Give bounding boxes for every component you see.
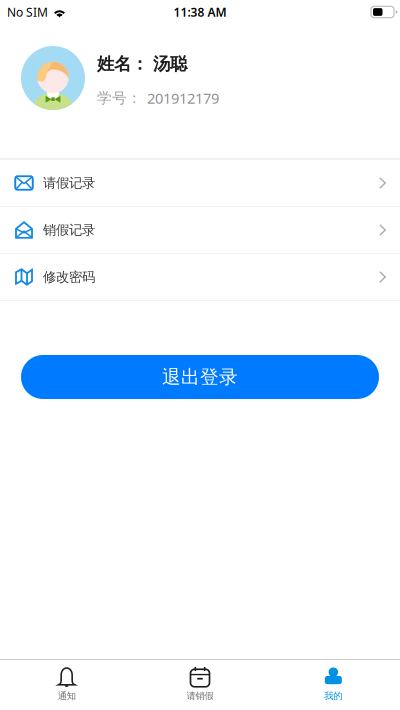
staticText: 修改密码 bbox=[43, 269, 95, 285]
button[interactable]: 通知 bbox=[0, 660, 133, 710]
button[interactable]: 请销假 bbox=[133, 660, 267, 710]
staticText: 通知 bbox=[58, 690, 76, 702]
staticText: No SIM bbox=[7, 4, 48, 20]
staticText: 退出登录 bbox=[162, 365, 238, 388]
staticText: 我的 bbox=[324, 690, 342, 702]
staticText: 请假记录 bbox=[43, 175, 95, 191]
staticText: 销假记录 bbox=[43, 222, 95, 238]
staticText: 11:38 AM bbox=[173, 4, 226, 20]
button[interactable]: 修改密码 bbox=[0, 254, 400, 301]
button[interactable]: 我的 bbox=[267, 660, 400, 710]
staticText: 请销假 bbox=[186, 690, 213, 702]
staticText: 学号： bbox=[97, 89, 142, 107]
button[interactable]: 退出登录 bbox=[21, 355, 379, 399]
button[interactable]: 请假记录 bbox=[0, 160, 400, 207]
staticText: 201912179 bbox=[147, 88, 219, 108]
button[interactable]: 销假记录 bbox=[0, 207, 400, 254]
staticText: 姓名： 汤聪 bbox=[97, 53, 187, 75]
